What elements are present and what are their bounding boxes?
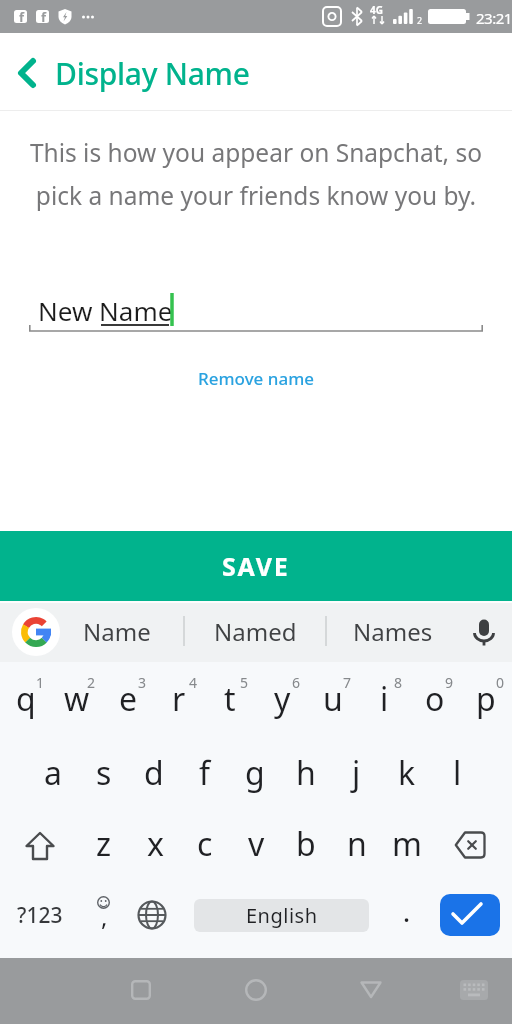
button[interactable]: ?123 xyxy=(12,884,68,946)
staticText: n xyxy=(347,822,367,866)
staticText: 1 xyxy=(36,673,45,692)
staticText: a xyxy=(44,751,62,795)
staticText: English xyxy=(246,902,318,929)
staticText: , xyxy=(101,900,108,933)
staticText: 2 xyxy=(417,14,423,26)
button[interactable]: e xyxy=(103,662,153,736)
staticText: SAVE xyxy=(222,549,290,583)
staticText: f xyxy=(199,751,211,795)
button[interactable] xyxy=(128,890,176,940)
staticText: f xyxy=(19,8,25,26)
staticText: 4 xyxy=(189,673,198,692)
staticText: 8 xyxy=(394,673,403,692)
button[interactable]: l xyxy=(432,736,482,810)
staticText: z xyxy=(96,822,112,866)
button[interactable] xyxy=(116,965,166,1015)
button[interactable]: w xyxy=(52,662,102,736)
staticText: u xyxy=(323,677,343,721)
button[interactable]: b xyxy=(281,808,331,880)
staticText: Name xyxy=(83,615,151,648)
staticText: Remove name xyxy=(198,367,315,390)
staticText: s xyxy=(96,751,112,795)
button[interactable] xyxy=(15,820,65,874)
button[interactable]: u xyxy=(308,662,358,736)
staticText: q xyxy=(16,677,36,721)
button[interactable]: t xyxy=(205,662,255,736)
button[interactable] xyxy=(440,894,500,936)
button[interactable] xyxy=(231,965,281,1015)
staticText: v xyxy=(248,822,265,866)
staticText: Names xyxy=(353,615,433,648)
staticText: h xyxy=(296,751,316,795)
staticText: k xyxy=(398,751,416,795)
staticText: New Name xyxy=(38,293,173,328)
button[interactable]: o xyxy=(410,662,460,736)
staticText: j xyxy=(352,751,361,795)
button[interactable]: r xyxy=(154,662,204,736)
staticText: o xyxy=(425,677,445,721)
button[interactable] xyxy=(346,965,396,1015)
staticText: This is how you appear on Snapchat, so p… xyxy=(0,136,512,212)
staticText: w xyxy=(64,677,90,721)
staticText: r xyxy=(172,677,186,721)
button[interactable]: Name xyxy=(67,603,167,660)
staticText: . xyxy=(403,894,411,929)
staticText: t xyxy=(224,677,236,721)
button[interactable]: Named xyxy=(205,603,306,660)
staticText: Display Name xyxy=(55,53,250,94)
button[interactable]: d xyxy=(129,736,179,810)
button[interactable] xyxy=(445,820,495,874)
button[interactable]: m xyxy=(382,808,432,880)
staticText: 9 xyxy=(445,673,454,692)
staticText: 23:21 xyxy=(476,8,512,28)
button[interactable]: h xyxy=(281,736,331,810)
staticText: b xyxy=(296,822,316,866)
staticText: 5 xyxy=(240,673,249,692)
button[interactable]: f xyxy=(180,736,230,810)
button[interactable]: j xyxy=(331,736,381,810)
button[interactable] xyxy=(445,966,501,1016)
button[interactable]: . xyxy=(390,880,424,942)
button[interactable]: v xyxy=(231,808,281,880)
button[interactable]: k xyxy=(382,736,432,810)
button[interactable]: n xyxy=(332,808,382,880)
staticText: m xyxy=(392,822,422,866)
staticText: 7 xyxy=(343,673,352,692)
button[interactable]: i xyxy=(359,662,409,736)
button[interactable]: Display Name xyxy=(0,33,512,111)
button[interactable]: s xyxy=(79,736,129,810)
button[interactable] xyxy=(12,608,60,656)
staticText: 6 xyxy=(292,673,301,692)
button[interactable]: y xyxy=(257,662,307,736)
button[interactable]: g xyxy=(230,736,280,810)
staticText: ?123 xyxy=(17,901,63,930)
staticText: x xyxy=(147,822,164,866)
staticText: 3 xyxy=(138,673,147,692)
staticText: Named xyxy=(214,615,297,648)
staticText: f xyxy=(41,8,47,26)
staticText: y xyxy=(274,677,291,721)
button[interactable]: Remove name xyxy=(176,364,336,392)
button[interactable]: c xyxy=(180,808,230,880)
button[interactable]: x xyxy=(130,808,180,880)
staticText: d xyxy=(144,751,164,795)
staticText: p xyxy=(476,677,496,721)
button[interactable]: p xyxy=(461,662,511,736)
staticText: 2 xyxy=(87,673,96,692)
staticText: l xyxy=(453,751,462,795)
staticText: c xyxy=(197,822,213,866)
button[interactable]: z xyxy=(79,808,129,880)
button[interactable]: Names xyxy=(343,603,443,660)
staticText: g xyxy=(245,751,265,795)
button[interactable]: SAVE xyxy=(0,531,512,601)
staticText: i xyxy=(380,677,389,721)
button[interactable]: , xyxy=(92,896,116,936)
button[interactable]: a xyxy=(28,736,78,810)
button[interactable]: q xyxy=(1,662,51,736)
button[interactable]: English xyxy=(194,899,369,932)
staticText: 4G xyxy=(370,3,383,17)
staticText: e xyxy=(119,677,138,721)
staticText: 0 xyxy=(496,673,505,692)
